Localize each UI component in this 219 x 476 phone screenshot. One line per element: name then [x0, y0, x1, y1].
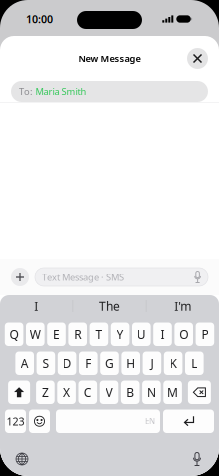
button[interactable]: K — [164, 351, 182, 375]
button[interactable]: Q — [5, 322, 23, 346]
staticText: A — [21, 355, 29, 371]
button[interactable]: P — [196, 322, 214, 346]
staticText: R — [74, 326, 81, 342]
button[interactable]: E — [47, 322, 66, 346]
staticText: I — [160, 326, 164, 342]
button[interactable]: V — [100, 380, 118, 404]
button[interactable]: B — [121, 380, 139, 404]
staticText: V — [105, 384, 112, 400]
staticText: New Message — [78, 52, 140, 65]
button[interactable]: L — [185, 351, 204, 375]
staticText: I'm — [174, 298, 191, 314]
staticText: M — [167, 384, 178, 400]
button[interactable]: I — [153, 322, 172, 346]
button[interactable]: Next keyboard — [9, 446, 35, 472]
staticText: Maria Smith — [35, 85, 86, 98]
staticText: D — [63, 355, 72, 371]
button[interactable]: Delete — [188, 380, 211, 404]
staticText: B — [126, 384, 134, 400]
staticText: S — [42, 355, 49, 371]
staticText: J — [150, 355, 153, 371]
button[interactable]: D — [58, 351, 76, 375]
staticText: Q — [10, 326, 19, 342]
button[interactable]: S — [37, 351, 55, 375]
staticText: U — [137, 326, 146, 342]
button[interactable]: Add attachment — [11, 268, 29, 286]
button[interactable]: I'm — [146, 295, 219, 317]
button[interactable]: To: — [11, 81, 208, 102]
staticText: W — [30, 326, 41, 342]
staticText: E — [53, 326, 60, 342]
button[interactable]: Return — [163, 409, 214, 433]
button[interactable]: O — [174, 322, 193, 346]
staticText: I — [34, 298, 38, 314]
button[interactable]: Text Message · SMS — [35, 268, 208, 286]
staticText: T — [95, 326, 102, 342]
button[interactable]: H — [121, 351, 140, 375]
staticText: F — [85, 355, 91, 371]
button[interactable]: T — [90, 322, 108, 346]
button[interactable]: 123 — [5, 409, 26, 433]
staticText: G — [105, 355, 114, 371]
staticText: To: — [19, 85, 33, 98]
button[interactable]: F — [79, 351, 98, 375]
staticText: O — [179, 326, 188, 342]
staticText: K — [170, 355, 177, 371]
staticText: 123 — [6, 414, 24, 428]
staticText: H — [126, 355, 135, 371]
button[interactable]: Z — [36, 380, 55, 404]
button[interactable]: A — [15, 351, 34, 375]
staticText: P — [201, 326, 208, 342]
staticText: C — [84, 384, 92, 400]
button[interactable]: Close — [187, 48, 208, 69]
staticText: EN — [145, 416, 155, 426]
button[interactable]: Emoji — [29, 409, 50, 433]
staticText: Text Message · SMS — [42, 271, 124, 283]
staticText: Y — [117, 326, 124, 342]
button[interactable]: Dictation — [184, 446, 210, 472]
button[interactable]: I — [0, 295, 73, 317]
button[interactable]: X — [57, 380, 76, 404]
button[interactable]: The — [73, 295, 146, 317]
button[interactable]: Shift — [8, 380, 30, 404]
button[interactable]: G — [100, 351, 119, 375]
button[interactable]: C — [78, 380, 97, 404]
staticText: N — [147, 384, 156, 400]
button[interactable]: N — [142, 380, 161, 404]
button[interactable]: space — [56, 409, 160, 433]
button[interactable]: W — [26, 322, 45, 346]
button[interactable]: Y — [111, 322, 129, 346]
staticText: The — [99, 298, 120, 314]
staticText: L — [191, 355, 197, 371]
button[interactable]: M — [163, 380, 182, 404]
button[interactable]: U — [132, 322, 151, 346]
staticText: Z — [42, 384, 49, 400]
button[interactable]: R — [68, 322, 87, 346]
button[interactable]: J — [143, 351, 161, 375]
staticText: X — [63, 384, 70, 400]
staticText: 10:00 — [26, 12, 53, 26]
